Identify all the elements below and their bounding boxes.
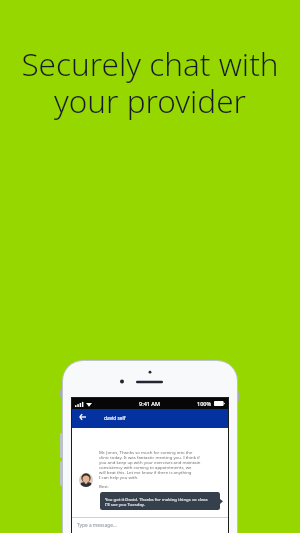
staticText: 100%	[197, 400, 212, 407]
staticText: You got it David. Thanks for making thin…	[105, 496, 209, 507]
button[interactable]: Back	[72, 409, 228, 428]
staticText: Mr. Jones, Thanks so much for coming int…	[99, 449, 201, 480]
button[interactable]: Type a message...	[72, 517, 228, 533]
other: Back	[79, 414, 86, 420]
staticText: Securely chat with your provider	[0, 42, 300, 122]
staticText: 9:41 AM	[139, 400, 161, 407]
staticText: david self	[104, 415, 126, 422]
staticText: Type a message...	[77, 522, 117, 529]
staticText: Best.	[99, 483, 110, 489]
